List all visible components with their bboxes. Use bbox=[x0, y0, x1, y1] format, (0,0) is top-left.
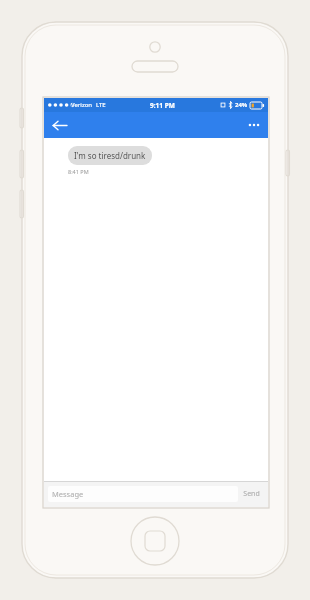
button[interactable]: Send bbox=[238, 481, 264, 507]
staticText: Message bbox=[52, 489, 84, 499]
button[interactable]: More options bbox=[244, 115, 264, 135]
staticText: 9:11 PM bbox=[150, 101, 175, 110]
staticText: Verizon bbox=[71, 101, 93, 109]
staticText: I'm so tiresd/drunk bbox=[74, 150, 146, 161]
staticText: 24% bbox=[235, 101, 248, 109]
button[interactable]: Back bbox=[48, 114, 70, 136]
staticText: LTE bbox=[96, 101, 106, 109]
button[interactable]: I'm so tiresd/drunk bbox=[68, 146, 152, 165]
button[interactable]: Message bbox=[48, 486, 238, 502]
staticText: Send bbox=[243, 489, 260, 499]
staticText: 8:41 PM bbox=[68, 168, 89, 175]
